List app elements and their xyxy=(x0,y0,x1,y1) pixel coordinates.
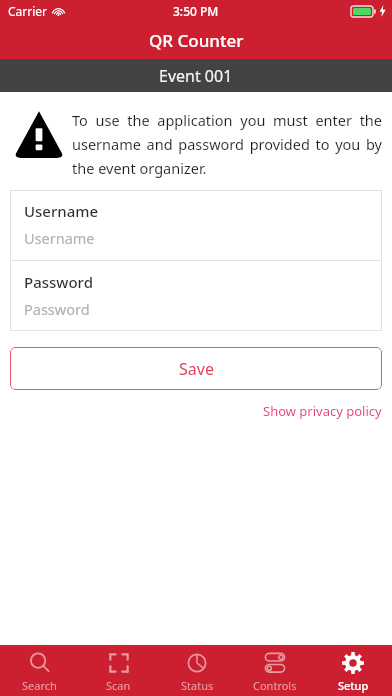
staticText: Show privacy policy xyxy=(263,402,382,420)
staticText: Scan xyxy=(106,678,131,693)
staticText: Carrier xyxy=(8,3,48,19)
staticText: Username xyxy=(24,201,99,221)
button[interactable]: Status xyxy=(158,645,236,696)
staticText: Setup xyxy=(338,678,369,693)
staticText: Password xyxy=(24,272,93,292)
staticText: Password xyxy=(24,299,90,319)
staticText: Event 001 xyxy=(159,65,233,87)
staticText: To use the application you must enter th… xyxy=(72,110,382,178)
staticText: Save xyxy=(179,358,214,380)
button[interactable]: Controls xyxy=(236,645,314,696)
button[interactable]: Scan xyxy=(79,645,158,696)
staticText: QR Counter xyxy=(149,29,244,52)
button[interactable]: Save xyxy=(10,347,382,390)
staticText: 3:50 PM xyxy=(173,3,219,19)
button[interactable]: Setup xyxy=(314,645,392,696)
staticText: Username xyxy=(24,228,95,248)
button[interactable]: Password xyxy=(10,261,382,331)
staticText: Search xyxy=(22,678,57,693)
staticText: Status xyxy=(181,678,214,693)
button[interactable]: Search xyxy=(0,645,79,696)
button[interactable]: Show privacy policy xyxy=(253,398,392,424)
staticText: Controls xyxy=(253,678,297,693)
button[interactable]: Username xyxy=(10,190,382,260)
